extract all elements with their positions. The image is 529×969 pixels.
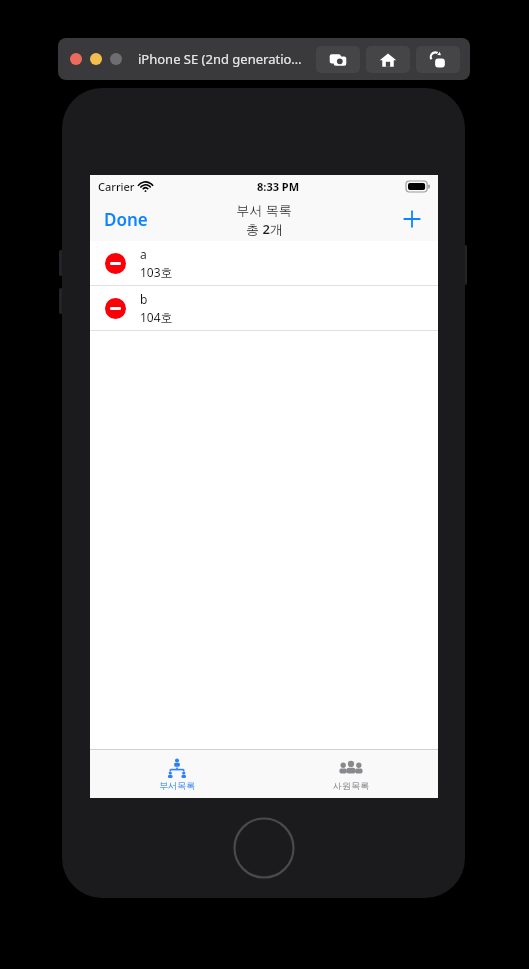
button[interactable]: Delete b xyxy=(90,286,438,330)
button[interactable]: Delete a xyxy=(90,241,438,285)
button[interactable]: Delete a xyxy=(104,252,126,274)
staticText: 부서 목록 xyxy=(236,201,292,219)
staticText: 사원목록 xyxy=(333,780,369,791)
staticText: Done xyxy=(104,208,148,231)
button[interactable]: Delete b xyxy=(104,297,126,319)
button[interactable]: Done xyxy=(98,204,154,235)
staticText: 104호 xyxy=(140,309,173,325)
staticText: Carrier xyxy=(98,179,135,194)
button[interactable]: Rotate xyxy=(416,46,460,73)
staticText: 103호 xyxy=(140,264,173,280)
staticText: 총 2개 xyxy=(246,220,283,238)
staticText: a xyxy=(140,246,147,262)
button[interactable]: Add xyxy=(396,203,428,235)
staticText: b xyxy=(140,291,148,307)
button[interactable]: Screenshot xyxy=(316,46,360,73)
staticText: 8:33 PM xyxy=(257,179,300,194)
button[interactable]: 부서목록 xyxy=(90,750,264,798)
button[interactable]: Home xyxy=(366,46,410,73)
button[interactable]: 사원목록 xyxy=(264,750,438,798)
staticText: 부서목록 xyxy=(159,780,195,791)
staticText: iPhone SE (2nd generatio… xyxy=(138,50,302,68)
